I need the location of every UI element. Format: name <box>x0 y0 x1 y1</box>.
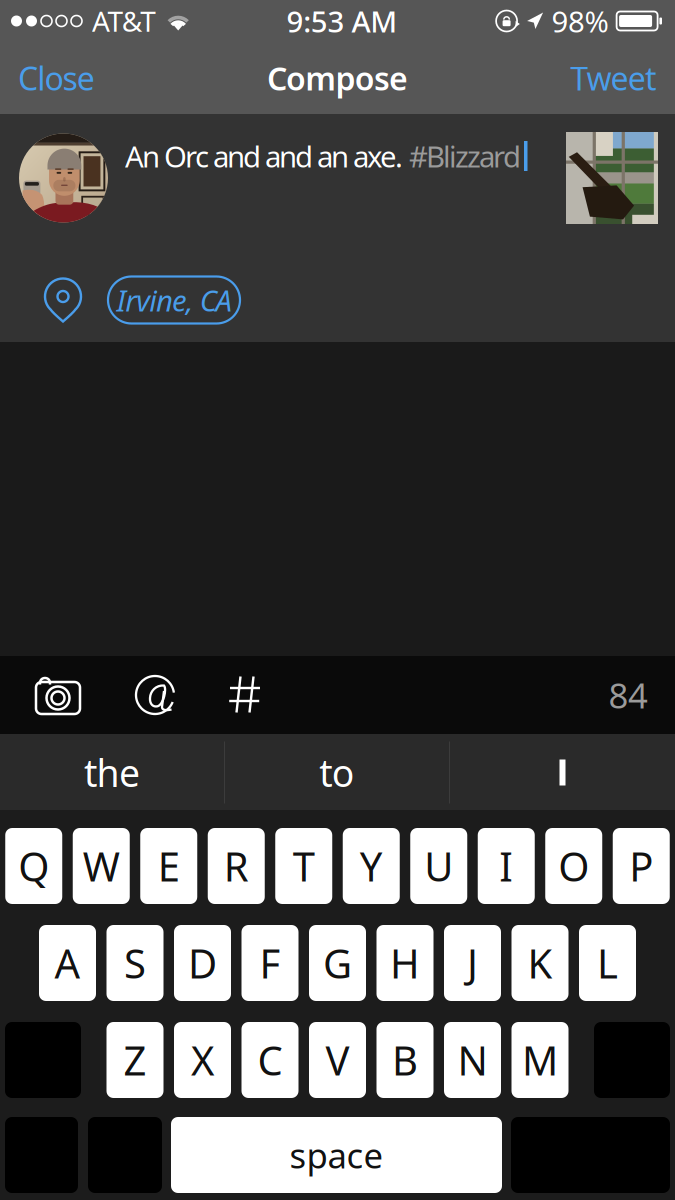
button[interactable]: L <box>579 925 636 1001</box>
staticText: Z <box>123 1033 146 1086</box>
staticText: D <box>188 936 217 989</box>
button[interactable]: Q <box>5 828 62 904</box>
button[interactable]: I <box>478 828 535 904</box>
button[interactable]: S <box>106 925 163 1001</box>
button[interactable]: H <box>376 925 433 1001</box>
staticText: Y <box>360 839 383 892</box>
staticText: T <box>293 839 315 892</box>
staticText: Q <box>18 839 49 892</box>
staticText: O <box>558 839 589 892</box>
staticText: Tweet <box>570 57 657 99</box>
button[interactable]: A <box>39 925 96 1001</box>
staticText: V <box>325 1033 349 1086</box>
button[interactable]: G <box>309 925 366 1001</box>
staticText: Close <box>18 57 95 99</box>
staticText: 84 <box>609 672 648 718</box>
button[interactable]: K <box>511 925 568 1001</box>
staticText: the <box>84 748 140 797</box>
staticText: AT&T <box>92 2 156 40</box>
button[interactable]: to <box>225 734 449 811</box>
button[interactable]: E <box>140 828 197 904</box>
staticText: G <box>323 936 352 989</box>
staticText: I <box>499 839 513 892</box>
button[interactable]: the <box>0 734 224 811</box>
button[interactable]: I <box>450 734 675 811</box>
button[interactable]: M <box>511 1022 568 1098</box>
staticText: H <box>390 936 420 989</box>
staticText: M <box>522 1033 558 1086</box>
staticText: Compose <box>267 57 408 99</box>
button[interactable]: Y <box>343 828 400 904</box>
staticText: to <box>319 748 355 797</box>
button[interactable]: Add photo <box>28 667 88 723</box>
button[interactable]: O <box>545 828 602 904</box>
button[interactable]: Tweet <box>552 43 675 113</box>
staticText: S <box>124 936 146 989</box>
staticText: N <box>457 1033 487 1086</box>
button[interactable]: space <box>171 1117 502 1193</box>
staticText: #Blizzard <box>409 136 521 175</box>
staticText: F <box>259 936 280 989</box>
staticText: 98% <box>552 1 609 40</box>
staticText: L <box>597 936 618 989</box>
button[interactable]: X <box>174 1022 231 1098</box>
button[interactable]: B <box>376 1022 433 1098</box>
button[interactable]: Z <box>106 1022 163 1098</box>
staticText: P <box>629 839 653 892</box>
button[interactable]: P <box>613 828 670 904</box>
staticText: X <box>191 1033 214 1086</box>
staticText: R <box>224 839 249 892</box>
staticText: J <box>467 936 478 989</box>
button[interactable]: F <box>241 925 298 1001</box>
button[interactable]: U <box>410 828 467 904</box>
button[interactable]: J <box>444 925 501 1001</box>
staticText: B <box>392 1033 418 1086</box>
staticText: A <box>54 936 80 989</box>
button[interactable]: C <box>241 1022 298 1098</box>
staticText: Irvine, CA <box>116 280 231 319</box>
button[interactable]: W <box>73 828 130 904</box>
button[interactable]: Irvine, CA <box>108 276 240 323</box>
button[interactable]: Close <box>0 43 113 113</box>
button[interactable]: Mention <box>127 667 183 723</box>
staticText: U <box>424 839 453 892</box>
button[interactable]: Hashtag <box>220 667 270 723</box>
button[interactable]: N <box>444 1022 501 1098</box>
button[interactable]: T <box>275 828 332 904</box>
staticText: C <box>257 1033 282 1086</box>
button[interactable]: Location <box>39 272 87 328</box>
button[interactable]: R <box>208 828 265 904</box>
button[interactable]: V <box>309 1022 366 1098</box>
staticText: An Orc and and an axe. <box>125 136 409 175</box>
staticText: 9:53 AM <box>287 1 397 40</box>
staticText: K <box>527 936 552 989</box>
button[interactable]: D <box>174 925 231 1001</box>
staticText: W <box>83 839 120 892</box>
staticText: space <box>289 1132 383 1178</box>
staticText: E <box>158 839 180 892</box>
